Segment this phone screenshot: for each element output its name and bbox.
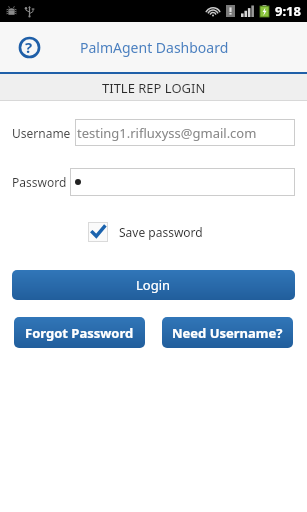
staticText: Login xyxy=(136,276,171,294)
button[interactable] xyxy=(70,168,295,196)
staticText: Save password xyxy=(119,224,203,240)
button[interactable]: testing1.rifluxyss@gmail.com xyxy=(75,119,295,146)
staticText: PalmAgent Dashboard xyxy=(80,38,229,57)
button[interactable]: Save password xyxy=(88,222,203,242)
staticText: 9:18 xyxy=(275,2,301,20)
button[interactable]: Need Username? xyxy=(162,317,293,348)
staticText: ? xyxy=(25,37,33,57)
staticText: Password xyxy=(12,174,67,190)
staticText: Need Username? xyxy=(172,324,283,342)
staticText: testing1.rifluxyss@gmail.com xyxy=(77,124,257,142)
button[interactable]: Help xyxy=(14,32,44,62)
button[interactable]: Login xyxy=(12,270,295,300)
button[interactable]: Forgot Password xyxy=(14,317,145,348)
staticText: TITLE REP LOGIN xyxy=(102,79,206,97)
staticText: Username xyxy=(12,125,71,141)
staticText: Forgot Password xyxy=(25,324,134,342)
